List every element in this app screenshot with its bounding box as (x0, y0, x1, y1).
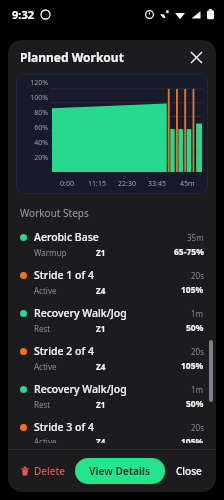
button[interactable]: Recovery Walk/Jog (8, 302, 216, 340)
staticText: Z4 (96, 361, 181, 372)
staticText: 40% (16, 138, 48, 148)
button[interactable]: Stride 3 of 4 (8, 416, 216, 449)
staticText: 105% (181, 360, 204, 372)
staticText: Warmup (34, 247, 96, 258)
staticText: Stride 3 of 4 (34, 420, 191, 434)
staticText: Z4 (96, 285, 181, 296)
staticText: 50% (186, 322, 204, 334)
staticText: Planned Workout (20, 49, 124, 65)
staticText: 20% (16, 153, 48, 163)
staticText: 80% (16, 108, 48, 118)
staticText: Stride 1 of 4 (34, 268, 191, 282)
staticText: Aerobic Base (34, 230, 187, 244)
button[interactable]: Recovery Walk/Jog (8, 378, 216, 416)
staticText: Recovery Walk/Jog (34, 306, 191, 320)
staticText: 100% (16, 93, 48, 103)
staticText: 9:32 (12, 7, 34, 22)
staticText: 65-75% (174, 246, 204, 258)
staticText: Stride 2 of 4 (34, 344, 191, 358)
staticText: 33:45 (148, 179, 166, 189)
staticText: 120% (16, 78, 48, 88)
staticText: Z1 (96, 323, 186, 334)
button[interactable]: Close dialog (184, 45, 208, 69)
staticText: Recovery Walk/Jog (34, 382, 191, 396)
staticText: Active (34, 285, 96, 296)
staticText: 20s (191, 346, 204, 357)
staticText: 105% (181, 284, 204, 296)
staticText: 60% (16, 123, 48, 133)
staticText: 1m (191, 308, 204, 319)
staticText: 20s (191, 422, 204, 433)
button[interactable]: Close (172, 460, 206, 482)
staticText: 1m (191, 384, 204, 395)
staticText: 11:15 (88, 179, 106, 189)
staticText: 45m (180, 179, 195, 189)
staticText: Rest (34, 323, 96, 334)
staticText: Delete (34, 464, 66, 478)
staticText: Z4 (96, 436, 181, 443)
staticText: Close (176, 464, 202, 478)
staticText: 22:30 (118, 179, 136, 189)
staticText: 50% (186, 398, 204, 410)
staticText: Rest (34, 399, 96, 410)
staticText: Active (34, 361, 96, 372)
button[interactable]: Delete (18, 460, 68, 482)
staticText: Workout Steps (20, 206, 89, 220)
staticText: 20s (191, 270, 204, 281)
button[interactable]: Stride 2 of 4 (8, 340, 216, 378)
staticText: Z1 (96, 247, 174, 258)
staticText: 105% (181, 436, 204, 443)
button[interactable]: Aerobic Base (8, 226, 216, 264)
button[interactable]: View Details (75, 458, 165, 484)
staticText: 0:00 (60, 179, 74, 189)
staticText: Active (34, 436, 96, 443)
staticText: View Details (89, 464, 151, 478)
button[interactable]: Stride 1 of 4 (8, 264, 216, 302)
staticText: 35m (187, 232, 204, 243)
staticText: Z1 (96, 399, 186, 410)
